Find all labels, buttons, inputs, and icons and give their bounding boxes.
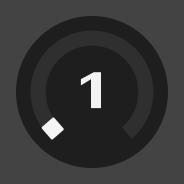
button[interactable]: Dial, value 1 (0, 0, 184, 184)
